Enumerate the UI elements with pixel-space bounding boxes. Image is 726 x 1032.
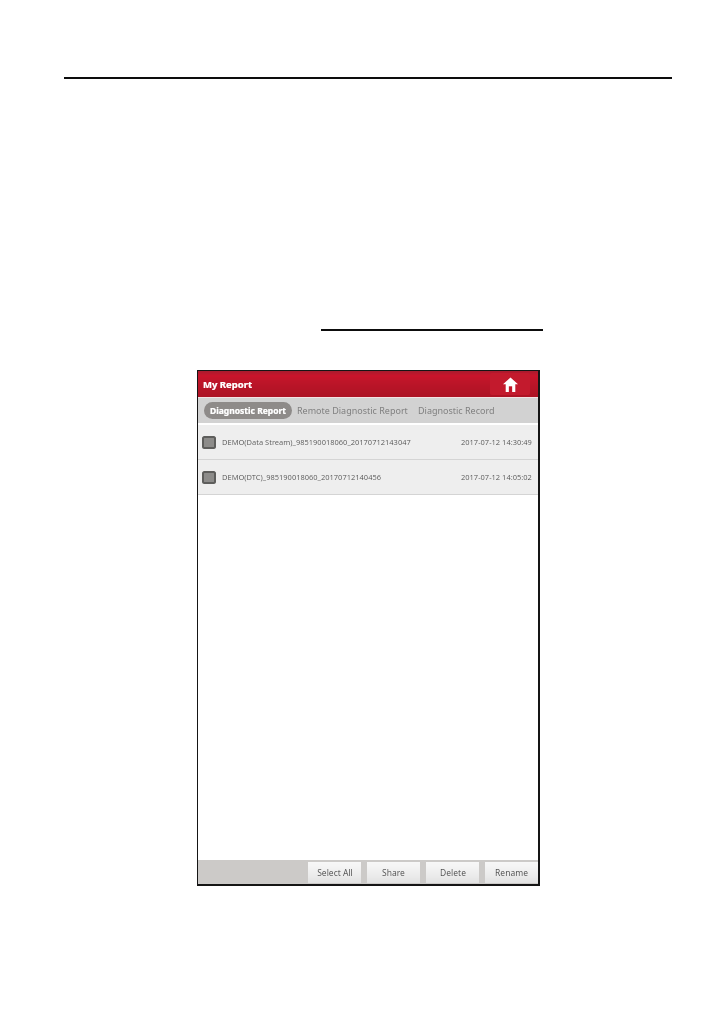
button[interactable]: Share <box>367 862 420 883</box>
staticText: DEMO(Data Stream)_985190018060_201707121… <box>222 437 411 447</box>
staticText: 2017-07-12 14:05:02 <box>461 472 532 482</box>
button[interactable]: Rename <box>485 862 538 883</box>
staticText: Select All <box>317 867 353 879</box>
button[interactable]: Diagnostic Record <box>413 397 501 423</box>
staticText: Diagnostic Record <box>418 404 495 416</box>
staticText: Delete <box>440 867 466 879</box>
button[interactable]: DEMO(DTC)_985190018060_20170712140456 <box>198 460 538 494</box>
staticText: Share <box>382 867 405 879</box>
button[interactable]: Home <box>490 373 530 395</box>
staticText: DEMO(DTC)_985190018060_20170712140456 <box>222 472 382 482</box>
button[interactable]: Select All <box>308 862 361 883</box>
button[interactable]: DEMO(Data Stream)_985190018060_201707121… <box>198 425 538 459</box>
button[interactable]: Remote Diagnostic Report <box>292 397 413 423</box>
button[interactable]: Delete <box>426 862 479 883</box>
staticText: Diagnostic Report <box>210 405 286 417</box>
button[interactable]: Diagnostic Report <box>204 402 292 419</box>
staticText: My Report <box>203 378 253 391</box>
staticText: 2017-07-12 14:30:49 <box>461 437 532 447</box>
staticText: Rename <box>495 867 528 879</box>
staticText: Remote Diagnostic Report <box>297 404 408 416</box>
